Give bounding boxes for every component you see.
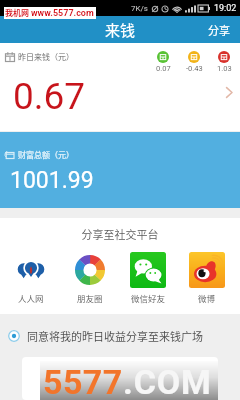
staticText: 分享 <box>208 22 230 38</box>
staticText: 朋友圈 <box>77 292 103 304</box>
button[interactable]: 同意将我的昨日收益分享至来钱广场 <box>0 314 240 354</box>
staticText: 分享至社交平台 <box>0 226 240 242</box>
staticText: 来钱 <box>105 19 136 40</box>
button[interactable]: 来钱 <box>91 16 150 43</box>
button[interactable]: 分享 <box>198 17 240 43</box>
staticText: 同意将我的昨日收益分享至来钱广场 <box>27 328 203 344</box>
staticText: 财富总额（元） <box>18 149 74 161</box>
staticText: 微信好友 <box>131 292 166 304</box>
staticText: .COM <box>123 362 212 400</box>
staticText: 19:02 <box>214 3 237 14</box>
button[interactable]: 朋友圈 <box>66 252 114 304</box>
staticText: 0.67 <box>13 75 86 118</box>
staticText: 0.07 <box>156 64 171 73</box>
staticText: 5577 <box>43 362 123 400</box>
staticText: www.5577.com <box>31 8 94 19</box>
button[interactable]: 人人网 <box>7 252 55 304</box>
staticText: 昨日来钱（元） <box>18 51 74 63</box>
staticText: -0.43 <box>186 64 203 73</box>
staticText: 1001.99 <box>10 167 94 194</box>
staticText: 微博 <box>198 292 216 304</box>
button[interactable]: 微信好友 <box>124 252 172 304</box>
button[interactable]: 昨日来钱（元） <box>0 43 240 131</box>
staticText: 7K/s <box>131 4 148 13</box>
button[interactable]: 微博 <box>183 252 231 304</box>
button[interactable]: 财富总额（元） <box>0 132 240 208</box>
staticText: 人人网 <box>18 292 44 304</box>
staticText: 1.03 <box>217 64 232 73</box>
staticText: 我机网 <box>5 7 29 19</box>
